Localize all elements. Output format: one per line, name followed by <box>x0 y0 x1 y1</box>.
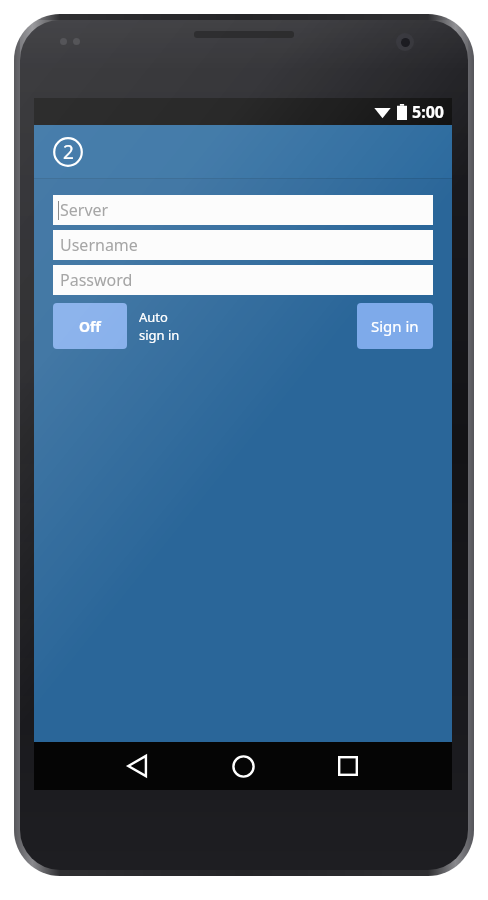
staticText: 5:00 <box>412 101 444 123</box>
staticText: 2 <box>63 139 74 165</box>
button[interactable]: Off <box>53 303 127 349</box>
staticText: Password <box>60 269 133 291</box>
staticText: Off <box>79 317 101 336</box>
staticText: Sign in <box>371 316 419 336</box>
button[interactable]: Server <box>53 195 433 225</box>
button[interactable]: Username <box>53 230 433 260</box>
button[interactable]: Recent apps <box>326 744 370 788</box>
button[interactable]: Back <box>116 744 160 788</box>
staticText: Auto <box>139 308 168 326</box>
button[interactable]: App icon, section 2 <box>46 130 90 174</box>
staticText: Server <box>60 199 109 221</box>
staticText: Username <box>60 234 138 256</box>
staticText: sign in <box>139 326 180 344</box>
button[interactable]: Home <box>221 744 265 788</box>
button[interactable]: Password <box>53 265 433 295</box>
button[interactable]: Sign in <box>357 303 433 349</box>
